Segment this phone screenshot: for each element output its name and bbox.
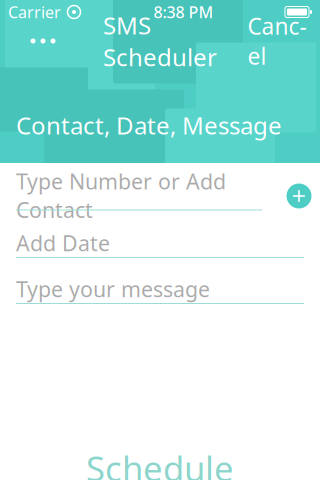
staticText: 8:38 PM — [153, 1, 213, 23]
staticText: SMS Scheduler — [103, 9, 217, 73]
button[interactable]: Add contact — [278, 179, 320, 213]
button[interactable]: Schedule — [0, 448, 320, 480]
button[interactable]: Add Date — [16, 229, 304, 258]
staticText: Type your message — [16, 275, 210, 303]
staticText: Add Date — [16, 229, 110, 257]
staticText: Cancel — [247, 11, 306, 71]
staticText: Type Number or Add Contact — [16, 167, 226, 224]
button[interactable]: More options — [8, 24, 78, 58]
staticText: Carrier — [8, 1, 61, 23]
staticText: Schedule — [86, 445, 234, 480]
button[interactable]: Type your message — [16, 275, 304, 304]
staticText: Contact, Date, Message — [16, 109, 282, 141]
button[interactable]: Cancel — [242, 24, 312, 58]
